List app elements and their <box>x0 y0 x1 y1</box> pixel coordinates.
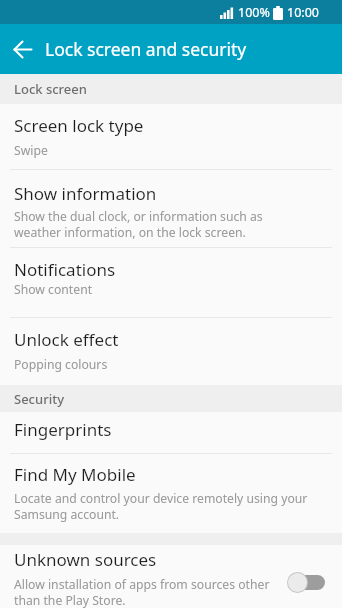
staticText: Security <box>14 390 64 408</box>
staticText: Lock screen <box>14 80 87 98</box>
staticText: Show information <box>14 182 157 205</box>
staticText: Lock screen and security <box>45 37 247 61</box>
button[interactable] <box>0 24 45 74</box>
staticText: Notifications <box>14 258 116 281</box>
staticText: Show content <box>14 281 93 298</box>
staticText: Fingerprints <box>14 418 112 441</box>
button[interactable]: Screen lock type <box>0 104 342 169</box>
button[interactable]: Show information <box>0 170 342 247</box>
staticText: Allow installation of apps from sources … <box>14 576 270 608</box>
button[interactable]: Notifications <box>0 248 342 317</box>
staticText: 10:00 <box>287 4 319 21</box>
button[interactable]: Fingerprints <box>0 412 342 453</box>
staticText: Unlock effect <box>14 328 119 351</box>
button[interactable]: Unknown sources <box>0 545 342 608</box>
staticText: Popping colours <box>14 356 108 373</box>
button[interactable]: Find My Mobile <box>0 454 342 533</box>
staticText: 100% <box>238 4 270 21</box>
button[interactable]: Unlock effect <box>0 318 342 385</box>
staticText: Locate and control your device remotely … <box>14 490 308 522</box>
staticText: Unknown sources <box>14 548 157 571</box>
staticText: Find My Mobile <box>14 463 136 486</box>
staticText: Swipe <box>14 142 48 159</box>
staticText: Show the dual clock, or information such… <box>14 208 263 240</box>
staticText: Screen lock type <box>14 114 144 137</box>
